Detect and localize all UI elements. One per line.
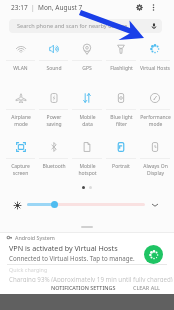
button[interactable]: Always On Display [138, 136, 172, 177]
button[interactable]: Airplane mode [4, 87, 37, 128]
staticText: Search phone and scan for nearby devices [17, 22, 128, 30]
staticText: VPN is activated by Virtual Hosts [9, 243, 118, 253]
staticText: Blue light filter [110, 114, 133, 128]
staticText: Android System [15, 234, 55, 241]
staticText: Charging 93% (Approximately 19 min until… [9, 275, 173, 283]
staticText: Power saving [46, 114, 62, 128]
staticText: NOTIFICATION SETTINGS [51, 284, 116, 291]
button[interactable]: WLAN [4, 38, 37, 72]
staticText: WLAN [13, 65, 28, 72]
staticText: | [31, 3, 35, 12]
button[interactable]: Mobile data [70, 87, 104, 128]
button[interactable]: Blue light filter [104, 87, 138, 128]
staticText: Always On Display [143, 163, 168, 177]
staticText: Performance mode [140, 114, 171, 128]
button[interactable]: Portrait [104, 136, 138, 170]
button[interactable]: NOTIFICATION SETTINGS [51, 284, 116, 291]
button[interactable]: Sound [37, 38, 70, 72]
button[interactable]: Bluetooth [37, 136, 70, 170]
staticText: Bluetooth [42, 163, 66, 170]
button[interactable]: Settings [133, 1, 146, 14]
staticText: Connected to Virtual Hosts. Tap to manag… [9, 254, 135, 262]
button[interactable]: Flashlight [104, 38, 138, 72]
button[interactable]: Mobile hotspot [70, 136, 104, 177]
staticText: Flashlight [110, 65, 133, 72]
staticText: Capture screen [11, 163, 30, 177]
button[interactable]: Search phone and scan for nearby devices [9, 19, 162, 33]
button[interactable]: Capture screen [4, 136, 37, 177]
staticText: Quick charging [9, 266, 48, 273]
staticText: CLEAR ALL [133, 284, 160, 291]
button[interactable]: Virtual Hosts [138, 38, 172, 72]
staticText: Portrait [112, 163, 130, 170]
button[interactable]: GPS [70, 38, 104, 72]
staticText: 23:17 [11, 3, 28, 12]
staticText: Airplane mode [11, 114, 31, 128]
staticText: Mobile hotspot [78, 163, 97, 177]
button[interactable]: Power saving [37, 87, 70, 128]
staticText: Sound [46, 65, 62, 72]
button[interactable]: CLEAR ALL [133, 284, 160, 291]
button[interactable]: Android System [0, 232, 174, 264]
button[interactable]: Expand [150, 200, 160, 210]
staticText: Mon, August 7 [38, 3, 83, 12]
staticText: GPS [82, 65, 92, 72]
button[interactable]: More options [147, 1, 160, 14]
button[interactable]: Performance mode [138, 87, 172, 128]
button[interactable]: Quick charging [0, 265, 174, 281]
staticText: Virtual Hosts [140, 65, 170, 72]
staticText: Mobile data [79, 114, 96, 128]
